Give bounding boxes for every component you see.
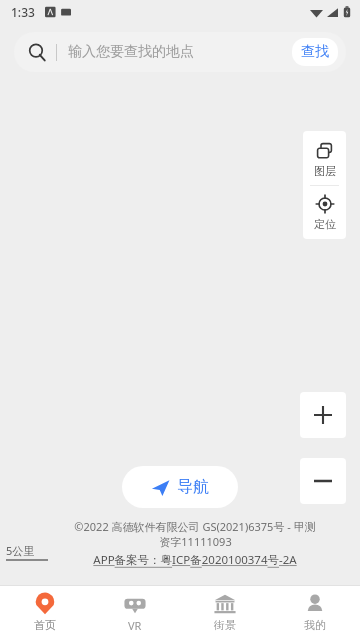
staticText: ©2022 高德软件有限公司 GS(2021)6375号 - 甲测 bbox=[74, 519, 316, 534]
button[interactable]: APP备案号：粤ICP备2020100374号-2A bbox=[93, 552, 297, 568]
staticText: 我的 bbox=[304, 618, 326, 632]
button[interactable]: 图层 bbox=[303, 131, 346, 185]
button[interactable]: 查找 bbox=[292, 38, 338, 66]
staticText: 街景 bbox=[214, 618, 236, 632]
button[interactable]: 街景 bbox=[180, 586, 270, 641]
staticText: 首页 bbox=[34, 618, 56, 632]
staticText: 定位 bbox=[314, 217, 336, 231]
staticText: 资字11111093 bbox=[159, 534, 232, 549]
staticText: 导航 bbox=[177, 477, 209, 497]
button[interactable]: 输入您要查找的地点 bbox=[14, 32, 346, 72]
staticText: 5公里 bbox=[6, 543, 35, 558]
button[interactable]: 定位 bbox=[303, 186, 346, 239]
button[interactable]: 导航 bbox=[122, 466, 238, 508]
staticText: 输入您要查找的地点 bbox=[68, 43, 194, 61]
staticText: 图层 bbox=[314, 164, 336, 178]
staticText: 查找 bbox=[301, 43, 329, 61]
staticText: 1:33 bbox=[11, 4, 35, 20]
staticText: VR bbox=[128, 618, 142, 633]
button[interactable]: VR bbox=[90, 586, 180, 641]
button[interactable]: Zoom out bbox=[300, 458, 346, 504]
button[interactable]: Zoom in bbox=[300, 392, 346, 438]
button[interactable]: 我的 bbox=[270, 586, 360, 641]
button[interactable]: 首页 bbox=[0, 586, 90, 641]
